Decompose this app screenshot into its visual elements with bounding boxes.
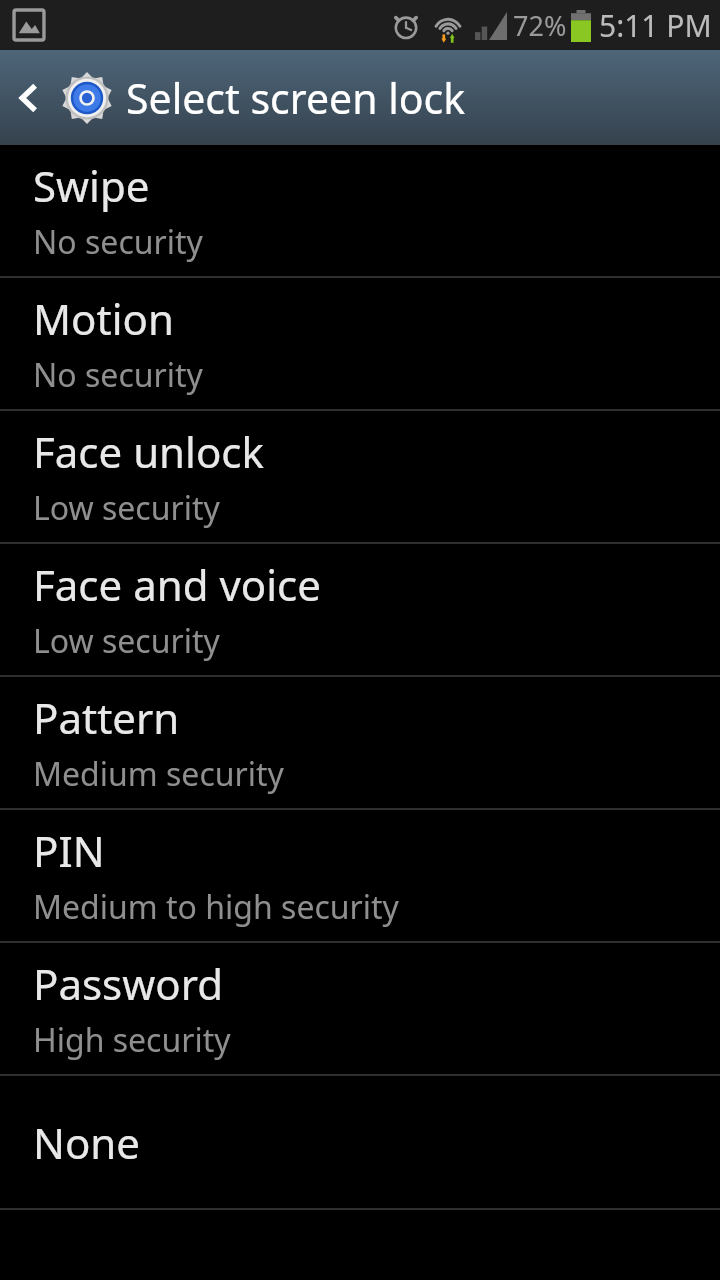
staticText: PIN [33,822,105,879]
button[interactable]: Motion [0,278,720,409]
staticText: Password [33,955,223,1012]
staticText: Select screen lock [126,70,466,126]
button[interactable]: None [0,1076,720,1208]
button[interactable]: Back [0,50,58,145]
staticText: 5:11 PM [599,5,712,46]
button[interactable]: PIN [0,810,720,941]
button[interactable]: Pattern [0,677,720,808]
staticText: Low security [33,619,220,663]
staticText: Medium to high security [33,885,399,929]
button[interactable]: Face and voice [0,544,720,675]
staticText: Low security [33,486,220,530]
staticText: No security [33,220,203,264]
button[interactable]: Swipe [0,145,720,276]
staticText: None [33,1114,140,1171]
button[interactable]: Face unlock [0,411,720,542]
staticText: High security [33,1018,231,1062]
staticText: No security [33,353,203,397]
button[interactable]: Password [0,943,720,1074]
staticText: Medium security [33,752,284,796]
staticText: Face and voice [33,556,321,613]
staticText: Motion [33,290,174,347]
staticText: Pattern [33,689,180,746]
staticText: Face unlock [33,423,264,480]
staticText: 72% [513,7,567,44]
staticText: Swipe [33,157,150,214]
